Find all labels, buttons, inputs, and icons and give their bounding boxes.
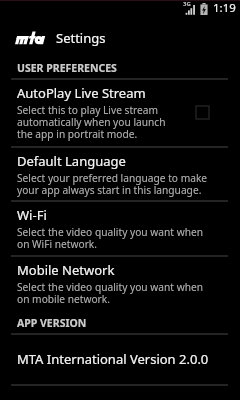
staticText: Select the video quality you want when — [17, 280, 203, 294]
button[interactable]: Settings — [56, 29, 106, 47]
staticText: Select your preferred language to make — [17, 171, 208, 185]
staticText: your app always start in this language. — [17, 183, 202, 197]
staticText: on WiFi network. — [17, 237, 98, 251]
staticText: APP VERSION — [17, 316, 87, 330]
button[interactable]: Wi-Fi — [0, 200, 240, 255]
staticText: Wi-Fi — [17, 206, 47, 224]
button[interactable]: APP VERSION — [17, 316, 87, 330]
button[interactable]: Default Language — [0, 146, 240, 200]
staticText: 3G — [183, 0, 191, 8]
staticText: automatically when you launch — [17, 115, 166, 129]
button[interactable]: AutoPlay Live Stream — [0, 78, 240, 146]
staticText: USER PREFERENCES — [17, 61, 117, 75]
button[interactable]: USER PREFERENCES — [17, 61, 117, 75]
button[interactable]: AutoPlay Live Stream checkbox — [196, 106, 209, 119]
staticText: Mobile Network — [17, 261, 115, 279]
button[interactable]: MTA International Version 2.0.0 — [0, 333, 240, 384]
staticText: 1:19 — [213, 0, 236, 16]
staticText: MTA International Version 2.0.0 — [17, 350, 209, 368]
staticText: Select the video quality you want when — [17, 225, 203, 239]
staticText: Settings — [56, 29, 106, 47]
staticText: Default Language — [17, 152, 126, 170]
button[interactable]: Mobile Network — [0, 255, 240, 315]
button[interactable]: MTA logo — [15, 31, 46, 45]
staticText: Select this to play Live stream — [17, 103, 159, 117]
staticText: AutoPlay Live Stream — [17, 84, 146, 102]
staticText: on mobile network. — [17, 292, 110, 306]
staticText: the app in portrait mode. — [17, 127, 138, 141]
